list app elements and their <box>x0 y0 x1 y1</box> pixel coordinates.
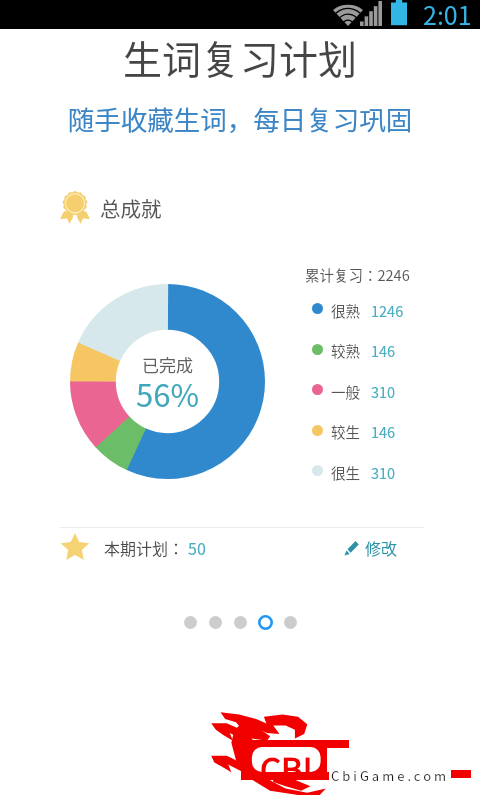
staticText: 修改 <box>365 536 398 559</box>
staticText: 2:01 <box>423 0 472 25</box>
staticText: CBI <box>260 744 313 775</box>
staticText: CbiGame.com <box>331 766 450 785</box>
staticText: 310 <box>371 462 396 483</box>
staticText: 很生 <box>331 462 360 483</box>
staticText: 很熟 <box>331 300 360 321</box>
staticText: 1246 <box>371 300 404 321</box>
button[interactable]: 修改 <box>343 536 398 559</box>
staticText: 本期计划： <box>104 536 185 559</box>
button[interactable]: 本期计划： <box>60 532 206 562</box>
staticText: 随手收藏生词，每日复习巩固 <box>0 99 480 137</box>
staticText: 56% <box>70 371 265 416</box>
staticText: 310 <box>371 381 396 402</box>
staticText: 生词复习计划 <box>0 29 480 85</box>
staticText: 较熟 <box>331 340 360 361</box>
staticText: 一般 <box>331 381 360 402</box>
staticText: 已完成 <box>70 352 265 377</box>
staticText: 累计复习：2246 <box>305 264 410 285</box>
staticText: 146 <box>371 421 396 442</box>
staticText: 较生 <box>331 421 360 442</box>
staticText: 总成就 <box>100 193 162 223</box>
staticText: 50 <box>188 536 206 559</box>
staticText: 146 <box>371 340 396 361</box>
